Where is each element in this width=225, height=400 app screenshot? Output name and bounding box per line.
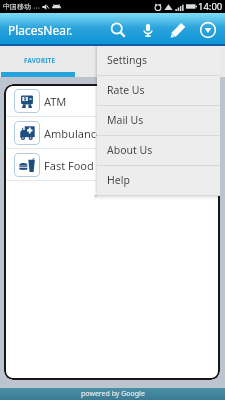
staticText: Help [107,173,130,187]
button[interactable]: More options [193,15,223,45]
staticText: Mail Us [107,113,144,127]
button[interactable]: ATM [4,85,220,117]
button[interactable]: Help [97,166,220,196]
button[interactable]: About Us [97,136,220,166]
button[interactable]: FAVORITE [0,46,75,77]
staticText: Fast Food [44,158,94,173]
staticText: PlacesNear. [8,22,73,38]
button[interactable]: Fast Food [4,149,220,181]
button[interactable]: Voice search [133,15,163,45]
staticText: Rate Us [107,83,145,97]
staticText: Ambulance [44,126,103,141]
staticText: ATM [44,94,67,109]
staticText: FAVORITE [24,56,56,64]
staticText: 中国移动 [3,2,31,11]
button[interactable]: Search [103,15,133,45]
staticText: powered by Google [81,389,145,399]
button[interactable]: Ambulance [4,117,220,149]
button[interactable]: Edit [163,15,193,45]
staticText: 14:00 [198,0,223,13]
button[interactable]: Mail Us [97,106,220,136]
button[interactable]: Settings [97,46,220,76]
staticText: Settings [107,53,147,67]
staticText: About Us [107,143,153,157]
button[interactable]: Rate Us [97,76,220,106]
